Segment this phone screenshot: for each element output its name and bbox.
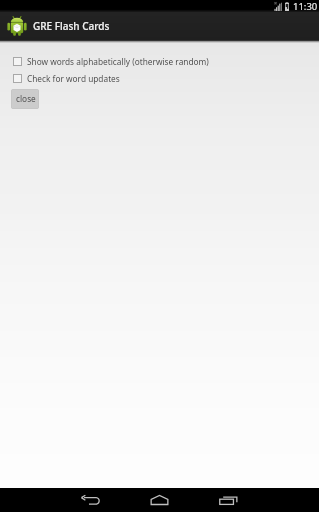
- staticText: Show words alphabetically (otherwise ran…: [27, 56, 209, 67]
- staticText: close: [16, 93, 36, 104]
- staticText: Check for word updates: [27, 73, 120, 84]
- button[interactable]: Home: [125, 488, 194, 512]
- staticText: GRE Flash Cards: [33, 19, 110, 33]
- staticText: 11:30: [293, 0, 318, 12]
- button[interactable]: Recent apps: [194, 488, 263, 512]
- button[interactable]: Check for word updates: [0, 70, 319, 87]
- button[interactable]: close: [11, 89, 39, 109]
- button[interactable]: Back: [56, 488, 125, 512]
- button[interactable]: Show words alphabetically (otherwise ran…: [0, 53, 319, 70]
- button[interactable]: GRE Flash Cards: [0, 12, 319, 40]
